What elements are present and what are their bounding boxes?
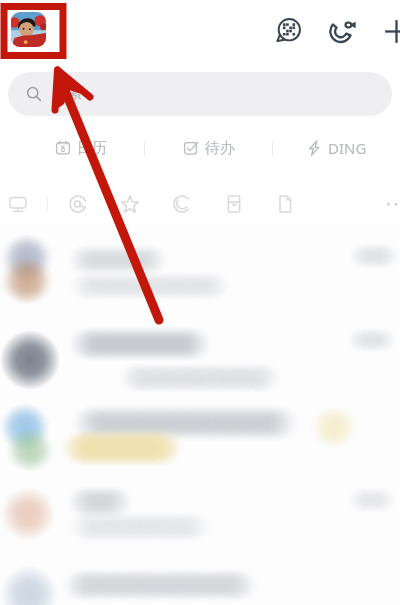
staticText: DING xyxy=(328,138,367,158)
button[interactable]: Starred xyxy=(114,188,146,220)
button[interactable]: More filters xyxy=(376,188,400,220)
button[interactable]: 待办 xyxy=(145,122,272,174)
staticText: 搜索 xyxy=(54,85,82,103)
button[interactable]: Files xyxy=(269,188,301,220)
button[interactable]: Profile avatar xyxy=(11,12,46,47)
staticText: 待办 xyxy=(205,139,235,158)
staticText: 日历 xyxy=(77,139,107,158)
button[interactable]: Video call xyxy=(320,8,366,54)
button[interactable]: Add xyxy=(373,8,400,54)
button[interactable]: 搜索 xyxy=(8,72,392,116)
button[interactable]: Mentions xyxy=(62,188,94,220)
button[interactable]: Muted xyxy=(166,188,198,220)
button[interactable]: Scan QR code xyxy=(265,8,311,54)
button[interactable]: DING xyxy=(273,122,400,174)
button[interactable]: Devices xyxy=(2,188,34,220)
button[interactable]: Archive xyxy=(218,188,250,220)
button[interactable]: 日历 xyxy=(17,122,144,174)
